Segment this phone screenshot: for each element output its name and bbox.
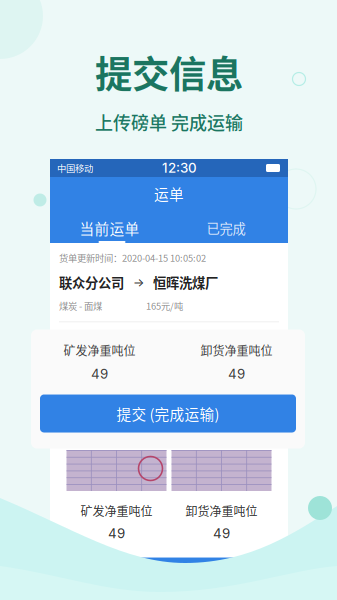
staticText: 联众分公司 [59,272,124,292]
staticText: 货单更新时间：2020-04-15 10:05:02 [59,251,206,264]
staticText: 运单 [154,183,184,204]
staticText: → [133,275,144,289]
staticText: 中国移动 [57,161,93,175]
staticText: 49 [108,525,125,541]
staticText: 当前运单 [79,217,139,239]
staticText: 49 [228,366,245,382]
staticText: 165元/吨 [146,299,183,312]
staticText: 12:30 [162,160,197,176]
staticText: 恒晖洗煤厂 [153,272,218,292]
staticText: 上传磅单 完成运输 [95,109,243,135]
staticText: 49 [91,366,108,382]
staticText: 卸货净重吨位 [185,502,257,519]
staticText: 备注 [59,329,81,345]
staticText: 矿发净重吨位 [63,341,135,359]
staticText: 矿发净重吨位 [80,502,152,519]
staticText: 煤炭 - 面煤 [59,299,102,312]
button[interactable]: 提交 (完成运输) [40,394,296,432]
staticText: 卸货净重吨位 [200,341,272,359]
staticText: 49 [213,525,230,541]
button[interactable]: 提交 (完成运输) [62,557,276,589]
staticText: 提交 (完成运输) [116,403,219,424]
staticText: 提交信息 [95,45,243,99]
staticText: 已完成 [206,218,245,238]
